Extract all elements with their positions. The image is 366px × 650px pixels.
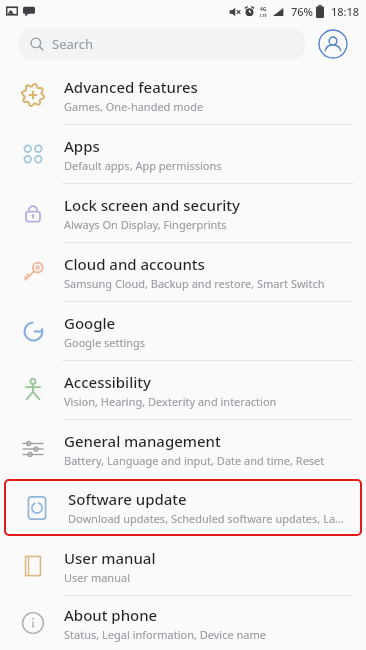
button[interactable]: Accessibility bbox=[0, 361, 366, 420]
button[interactable]: Google bbox=[0, 302, 366, 361]
staticText: 4G bbox=[260, 6, 267, 13]
button[interactable]: Cloud and accounts bbox=[0, 243, 366, 302]
button[interactable]: Apps bbox=[0, 125, 366, 184]
staticText: Default apps, App permissions bbox=[64, 158, 222, 173]
staticText: User manual bbox=[64, 570, 130, 585]
staticText: Status, Legal information, Device name bbox=[64, 627, 267, 642]
button[interactable]: User manual bbox=[0, 537, 366, 596]
button[interactable]: Software update bbox=[4, 479, 362, 536]
staticText: Cloud and accounts bbox=[64, 254, 205, 274]
staticText: Games, One-handed mode bbox=[64, 99, 204, 114]
staticText: 76% bbox=[291, 4, 313, 19]
staticText: Download updates, Scheduled software upd… bbox=[68, 511, 344, 526]
staticText: Vision, Hearing, Dexterity and interacti… bbox=[64, 394, 277, 409]
staticText: LTE bbox=[260, 13, 267, 18]
button[interactable]: Lock screen and security bbox=[0, 184, 366, 243]
staticText: Google bbox=[64, 313, 116, 333]
staticText: General management bbox=[64, 431, 221, 451]
button[interactable]: Advanced features bbox=[0, 66, 366, 125]
button[interactable]: Account bbox=[318, 29, 348, 59]
staticText: Samsung Cloud, Backup and restore, Smart… bbox=[64, 276, 325, 291]
staticText: Advanced features bbox=[64, 77, 198, 97]
staticText: Search bbox=[52, 35, 94, 53]
staticText: Battery, Language and input, Date and ti… bbox=[64, 453, 325, 468]
staticText: User manual bbox=[64, 548, 156, 568]
staticText: Always On Display, Fingerprints bbox=[64, 217, 227, 232]
button[interactable]: General management bbox=[0, 420, 366, 478]
button[interactable]: Search bbox=[18, 28, 306, 60]
staticText: Google settings bbox=[64, 335, 146, 350]
button[interactable]: About phone bbox=[0, 596, 366, 650]
staticText: Software update bbox=[68, 489, 187, 509]
staticText: Apps bbox=[64, 136, 100, 156]
staticText: 18:18 bbox=[331, 4, 360, 19]
staticText: Accessibility bbox=[64, 372, 151, 392]
staticText: About phone bbox=[64, 605, 158, 625]
staticText: Lock screen and security bbox=[64, 195, 240, 215]
